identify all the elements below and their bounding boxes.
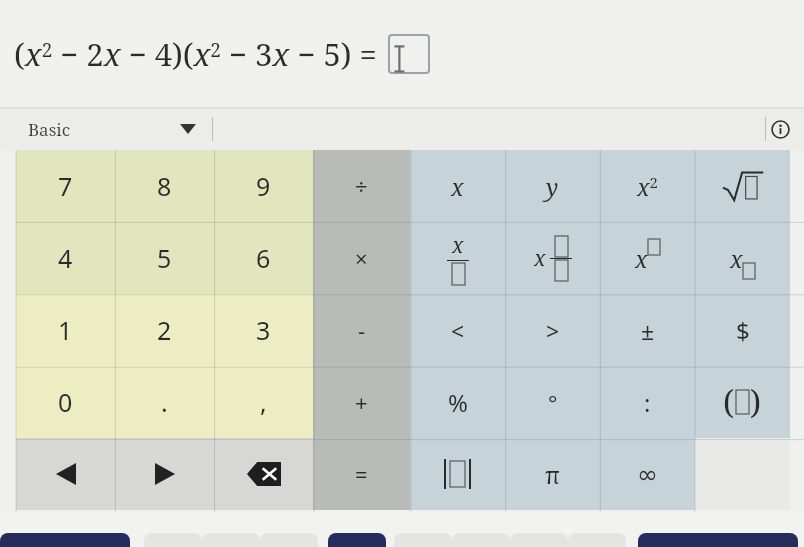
button[interactable]: Move right	[115, 438, 214, 510]
staticText: )	[750, 380, 762, 424]
staticText: x	[452, 231, 464, 260]
button[interactable]: Move left	[16, 438, 115, 510]
button[interactable]: Minus	[313, 294, 410, 366]
button[interactable]: Plus	[313, 366, 410, 438]
button[interactable]: Less than	[410, 294, 505, 366]
button[interactable]: Percent	[410, 366, 505, 438]
button[interactable]: Colon	[600, 366, 695, 438]
button[interactable]: 1	[16, 294, 115, 366]
button[interactable]: x squared	[600, 150, 695, 222]
button[interactable]: Fraction x over box	[410, 222, 505, 294]
staticText: ÷	[355, 171, 368, 201]
button[interactable]: Divide	[313, 150, 410, 222]
button[interactable]: 7	[16, 150, 115, 222]
button[interactable]: 3	[214, 294, 313, 366]
staticText: +	[355, 387, 368, 417]
staticText: x	[451, 171, 464, 202]
button[interactable]: Infinity	[600, 438, 695, 510]
button[interactable]: Keyboard key	[0, 533, 130, 547]
button[interactable]: 0	[16, 366, 115, 438]
staticText: x	[635, 243, 648, 274]
staticText: y	[546, 171, 559, 202]
staticText: >	[546, 315, 560, 346]
button[interactable]: Backspace	[214, 438, 313, 510]
button[interactable]: x subscript	[695, 222, 790, 294]
staticText: :	[644, 386, 651, 419]
button[interactable]: 2	[115, 294, 214, 366]
button[interactable]: Decimal point	[115, 366, 214, 438]
staticText: 6	[256, 241, 271, 275]
button[interactable]: Square root	[695, 150, 790, 222]
button[interactable]: 6	[214, 222, 313, 294]
button[interactable]: Multiply	[313, 222, 410, 294]
button[interactable]: Keyboard key	[638, 533, 798, 547]
staticText: (	[723, 380, 735, 424]
button[interactable]: Absolute value	[410, 438, 505, 510]
button[interactable]: Keyboard key	[328, 533, 386, 547]
staticText: <	[451, 315, 465, 346]
staticText: x	[534, 244, 546, 273]
button[interactable]: Greater than	[505, 294, 600, 366]
staticText: 4	[58, 241, 73, 275]
button[interactable]: Dollar	[695, 294, 790, 366]
staticText: Basic	[28, 118, 71, 141]
button[interactable]: Degree	[505, 366, 600, 438]
staticText: %	[448, 386, 468, 419]
staticText: ±	[641, 315, 655, 346]
staticText: x2	[637, 171, 658, 202]
button[interactable]: Plus minus	[600, 294, 695, 366]
button[interactable]: y	[505, 150, 600, 222]
staticText: 3	[256, 313, 271, 347]
button[interactable]: x times fraction	[505, 222, 600, 294]
staticText: ∞	[637, 460, 658, 489]
staticText: =	[355, 459, 368, 489]
staticText: (x2 − 2x − 4)(x2 − 3x − 5) =	[14, 33, 385, 75]
staticText: 9	[256, 169, 271, 203]
staticText: .	[161, 385, 168, 419]
button[interactable]	[695, 438, 790, 510]
staticText: ,	[260, 385, 267, 419]
staticText: 2	[157, 313, 172, 347]
button[interactable]: Information	[764, 113, 796, 145]
button[interactable]: 4	[16, 222, 115, 294]
button[interactable]: 8	[115, 150, 214, 222]
button[interactable]: Pi	[505, 438, 600, 510]
button[interactable]: x to the power	[600, 222, 695, 294]
button[interactable]: 5	[115, 222, 214, 294]
staticText: $	[736, 314, 750, 347]
staticText: 8	[157, 169, 172, 203]
staticText: 1	[58, 313, 73, 347]
staticText: x	[730, 243, 743, 274]
staticText: ×	[355, 243, 368, 273]
button[interactable]: Equals	[313, 438, 410, 510]
button[interactable]: 9	[214, 150, 313, 222]
staticText: -	[358, 315, 366, 345]
button[interactable]: x	[410, 150, 505, 222]
button[interactable]: Basic	[0, 108, 206, 150]
staticText: °	[548, 387, 558, 417]
staticText: 5	[157, 241, 172, 275]
staticText: π	[545, 459, 560, 490]
button[interactable]: Comma	[214, 366, 313, 438]
staticText: 0	[58, 385, 73, 419]
button[interactable]: Parentheses	[695, 366, 790, 438]
staticText: 7	[58, 169, 73, 203]
